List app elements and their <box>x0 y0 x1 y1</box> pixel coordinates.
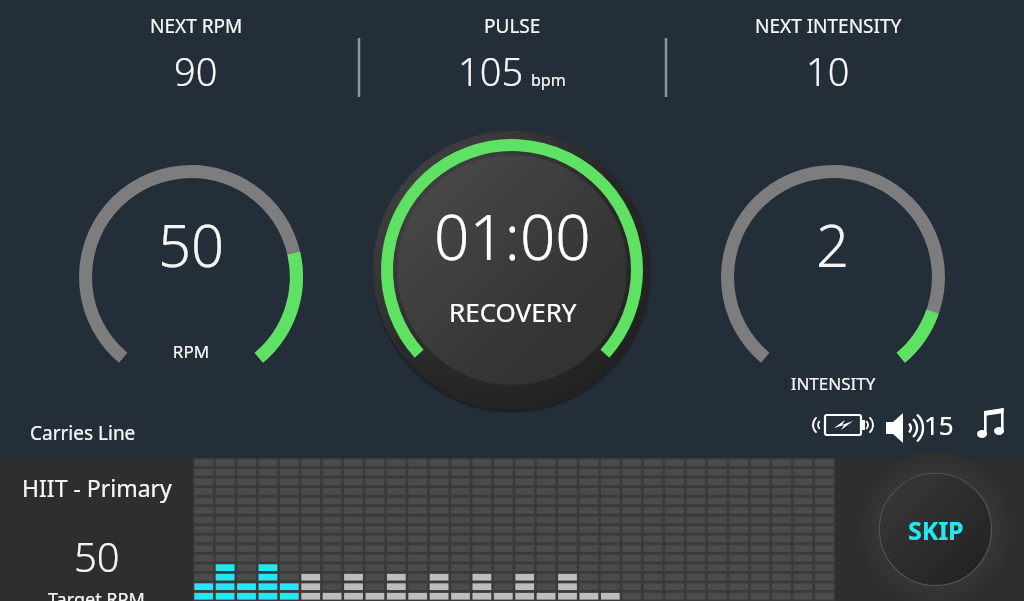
staticText: HIIT - Primary <box>22 472 172 503</box>
staticText: PULSE <box>484 13 541 39</box>
staticText: NEXT RPM <box>150 13 243 39</box>
staticText: 10 <box>806 45 850 97</box>
staticText: INTENSITY <box>721 372 945 395</box>
staticText: 50 <box>158 205 225 284</box>
button[interactable]: 2 <box>721 165 945 340</box>
staticText: NEXT INTENSITY <box>755 13 902 39</box>
staticText: RECOVERY <box>449 294 577 329</box>
staticText: RPM <box>79 340 303 363</box>
staticText: bpm <box>531 69 566 91</box>
button[interactable]: PULSE <box>392 13 632 97</box>
staticText: 2 <box>816 205 850 284</box>
button[interactable]: NEXT RPM <box>0 13 392 97</box>
staticText: 15 <box>924 407 954 442</box>
staticText: 105 <box>458 45 524 97</box>
button[interactable]: HIIT - Primary <box>0 458 193 601</box>
staticText: 01:00 <box>434 194 591 278</box>
staticText: SKIP <box>908 513 964 547</box>
button[interactable]: 50 <box>79 165 303 340</box>
button[interactable]: Music <box>972 405 1010 443</box>
staticText: Target RPM <box>48 587 145 601</box>
staticText: 50 <box>74 529 120 583</box>
button[interactable]: SKIP <box>880 474 992 586</box>
button[interactable]: 01:00 <box>373 131 651 409</box>
button[interactable]: Volume <box>882 407 954 442</box>
button[interactable]: Charging <box>812 405 868 443</box>
staticText: 90 <box>174 45 218 97</box>
button[interactable]: NEXT INTENSITY <box>632 13 1024 97</box>
staticText: Carries Line <box>30 420 136 446</box>
